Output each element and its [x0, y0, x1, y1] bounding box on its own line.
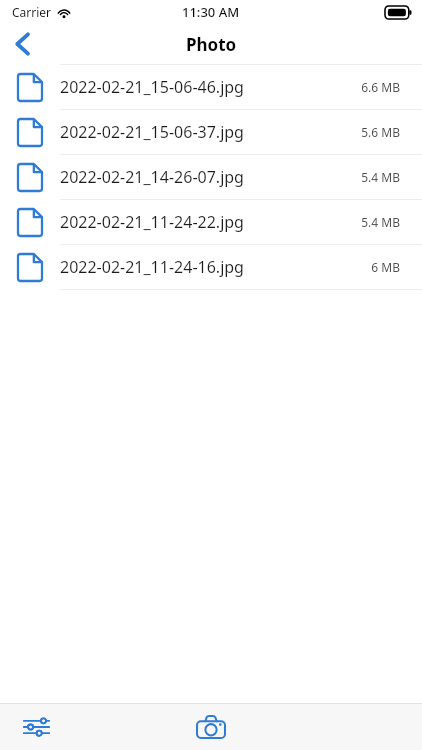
- button[interactable]: 2022-02-21_11-24-16.jpg: [0, 245, 422, 289]
- button[interactable]: Camera: [187, 705, 235, 749]
- staticText: 2022-02-21_11-24-22.jpg: [60, 211, 361, 233]
- staticText: Photo: [186, 33, 237, 56]
- staticText: 5.6 MB: [361, 124, 400, 140]
- button[interactable]: 2022-02-21_15-06-37.jpg: [0, 110, 422, 154]
- button[interactable]: 2022-02-21_11-24-22.jpg: [0, 200, 422, 244]
- button[interactable]: Back: [0, 24, 44, 64]
- staticText: 2022-02-21_11-24-16.jpg: [60, 256, 371, 278]
- staticText: 2022-02-21_15-06-37.jpg: [60, 121, 361, 143]
- staticText: 11:30 AM: [182, 3, 240, 21]
- staticText: 5.4 MB: [361, 169, 400, 185]
- staticText: 5.4 MB: [361, 214, 400, 230]
- staticText: 2022-02-21_15-06-46.jpg: [60, 76, 361, 98]
- staticText: 6 MB: [371, 259, 400, 275]
- staticText: 2022-02-21_14-26-07.jpg: [60, 166, 361, 188]
- button[interactable]: 2022-02-21_15-06-46.jpg: [0, 65, 422, 109]
- button[interactable]: Filters: [12, 705, 60, 749]
- staticText: 6.6 MB: [361, 79, 400, 95]
- staticText: Carrier: [12, 4, 52, 20]
- button[interactable]: 2022-02-21_14-26-07.jpg: [0, 155, 422, 199]
